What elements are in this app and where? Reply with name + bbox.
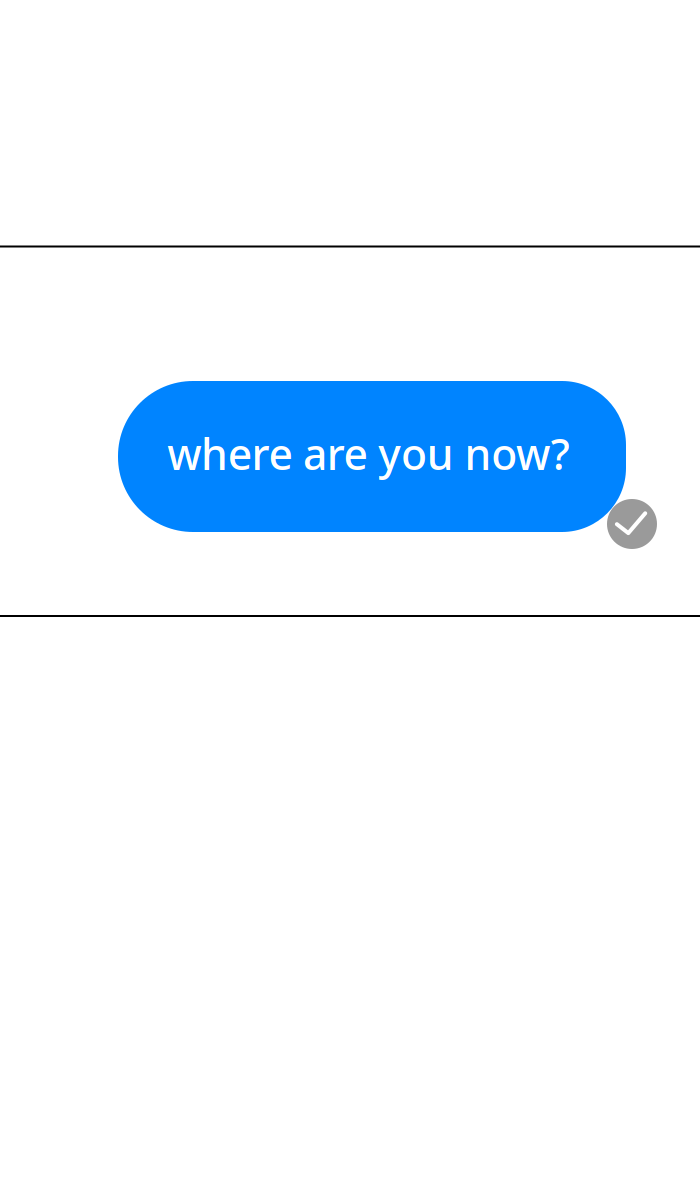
staticText: where are you now? <box>167 425 570 482</box>
button[interactable]: where are you now? <box>118 381 626 532</box>
